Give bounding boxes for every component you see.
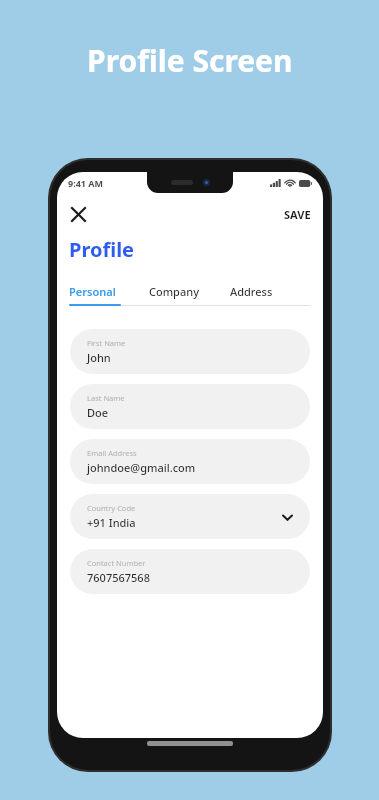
staticText: Profile	[69, 236, 135, 263]
staticText: Contact Number	[87, 558, 146, 568]
staticText: 7607567568	[87, 570, 150, 585]
staticText: First Name	[87, 338, 126, 348]
staticText: Email Address	[87, 448, 137, 458]
staticText: John	[87, 350, 111, 365]
button[interactable]: Contact Number	[70, 549, 310, 594]
other: Select country code	[278, 508, 296, 526]
button[interactable]: Close	[63, 199, 93, 229]
button[interactable]: Email Address	[70, 439, 310, 484]
staticText: Personal	[69, 284, 116, 299]
button[interactable]: SAVE	[278, 203, 317, 226]
staticText: Profile Screen	[87, 40, 293, 81]
button[interactable]: First Name	[70, 329, 310, 374]
staticText: Address	[230, 284, 273, 299]
button[interactable]: Company	[149, 279, 230, 304]
staticText: 9:41 AM	[68, 177, 104, 189]
staticText: johndoe@gmail.com	[87, 460, 196, 475]
button[interactable]: Country Code	[70, 494, 310, 539]
button[interactable]: Personal	[69, 279, 149, 304]
staticText: Doe	[87, 405, 109, 420]
button[interactable]: Last Name	[70, 384, 310, 429]
staticText: SAVE	[284, 207, 311, 222]
staticText: Last Name	[87, 393, 125, 403]
staticText: Company	[149, 284, 199, 299]
staticText: Country Code	[87, 503, 136, 513]
staticText: +91 India	[87, 515, 136, 530]
button[interactable]: Address	[230, 279, 311, 304]
